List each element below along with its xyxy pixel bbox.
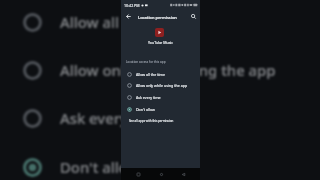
button[interactable]: Search [189,12,198,21]
button[interactable]: Ask every time [0,94,320,142]
button[interactable]: Don't allow [121,103,200,115]
staticText: Allow only while using the app [136,83,188,88]
button[interactable]: Back [124,12,133,21]
button[interactable]: Allow only while using the app [0,46,320,94]
button[interactable]: Allow all the time [121,68,200,80]
button[interactable]: Ask every time [121,91,200,103]
button[interactable]: Allow only while using the app [121,79,200,91]
button[interactable]: Back [178,169,188,179]
staticText: YouTube Music [148,40,173,45]
staticText: Allow only while using the app [60,60,276,80]
staticText: Allow all the time [136,72,165,77]
button[interactable]: See all apps with this permission [121,115,200,127]
staticText: Location permission [138,15,177,20]
staticText: Ask every time [60,108,165,128]
button[interactable]: Recents [133,169,143,179]
staticText: Don't allow [60,157,140,177]
staticText: Don't allow [136,107,155,112]
staticText: Allow all the time [60,12,183,32]
staticText: See all apps with this permission [129,119,174,123]
staticText: 10:42 PM [124,3,140,8]
button[interactable]: Don't allow [0,143,320,180]
staticText: Location access for this app [126,60,166,64]
button[interactable]: Home [156,169,166,179]
staticText: Ask every time [136,95,161,100]
button[interactable]: Allow all the time [0,0,320,46]
